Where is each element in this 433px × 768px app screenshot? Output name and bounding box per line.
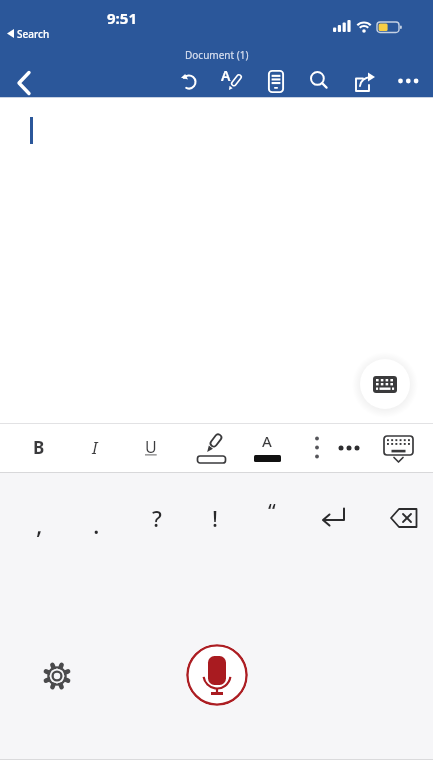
button[interactable] [351,65,381,95]
button[interactable] [382,498,426,538]
staticText: ! [212,503,219,533]
button[interactable] [380,430,418,468]
staticText: A [221,66,231,85]
staticText: “ [268,497,276,524]
button[interactable]: ? [137,500,177,536]
button[interactable]: A [218,64,248,94]
staticText: ? [152,503,162,533]
staticText: B [33,436,45,459]
button[interactable] [186,644,248,706]
staticText: . [93,508,100,541]
button[interactable]: U [134,430,168,464]
button[interactable]: ! [195,500,235,536]
button[interactable] [333,433,365,463]
button[interactable]: B [22,430,56,464]
button[interactable] [8,63,42,97]
button[interactable]: . [76,502,116,546]
button[interactable] [194,428,230,466]
button[interactable]: I [78,430,112,464]
staticText: Search [17,27,50,41]
staticText: I [92,436,98,459]
staticText: , [36,508,43,541]
staticText: A [262,431,272,451]
button[interactable] [303,65,333,95]
button[interactable] [38,657,76,695]
button[interactable]: “ [252,495,292,525]
button[interactable] [360,359,410,409]
button[interactable]: A [250,428,284,466]
staticText: U [145,436,157,458]
button[interactable] [173,65,203,95]
button[interactable] [261,66,291,96]
button[interactable] [393,66,423,96]
staticText: 9:51 [107,8,137,28]
staticText: Document (1) [185,48,249,62]
button[interactable]: , [19,502,59,546]
button[interactable] [312,496,354,538]
